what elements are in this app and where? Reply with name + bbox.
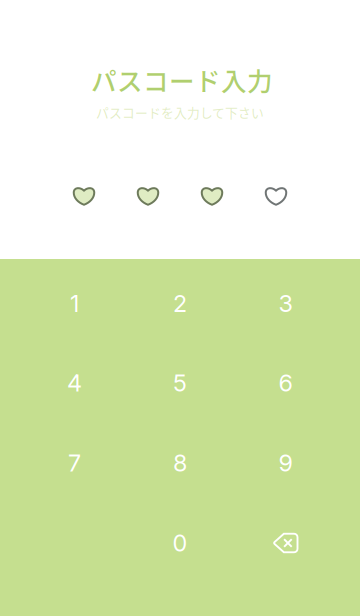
staticText: パスコード入力 (91, 61, 273, 98)
button[interactable]: 9 (233, 423, 338, 502)
staticText: パスコードを入力して下さい (96, 103, 264, 121)
button[interactable]: 7 (22, 423, 127, 502)
button[interactable]: 1 (22, 264, 127, 343)
staticText: 9 (278, 449, 292, 477)
staticText: 8 (173, 449, 187, 477)
button[interactable]: 0 (127, 503, 232, 582)
staticText: 0 (172, 529, 187, 557)
button[interactable]: 8 (127, 423, 232, 502)
button[interactable]: 5 (127, 343, 232, 422)
staticText: 4 (67, 369, 82, 397)
button[interactable]: 6 (233, 343, 338, 422)
staticText: 3 (278, 289, 292, 318)
staticText: 6 (278, 369, 292, 397)
staticText: 2 (173, 289, 187, 318)
button[interactable]: 2 (127, 264, 232, 343)
staticText: 7 (68, 449, 81, 477)
button[interactable]: 4 (22, 343, 127, 422)
staticText: 5 (173, 369, 187, 397)
staticText: 1 (70, 289, 79, 318)
button[interactable]: 3 (233, 264, 338, 343)
button[interactable]: Delete (233, 503, 338, 582)
